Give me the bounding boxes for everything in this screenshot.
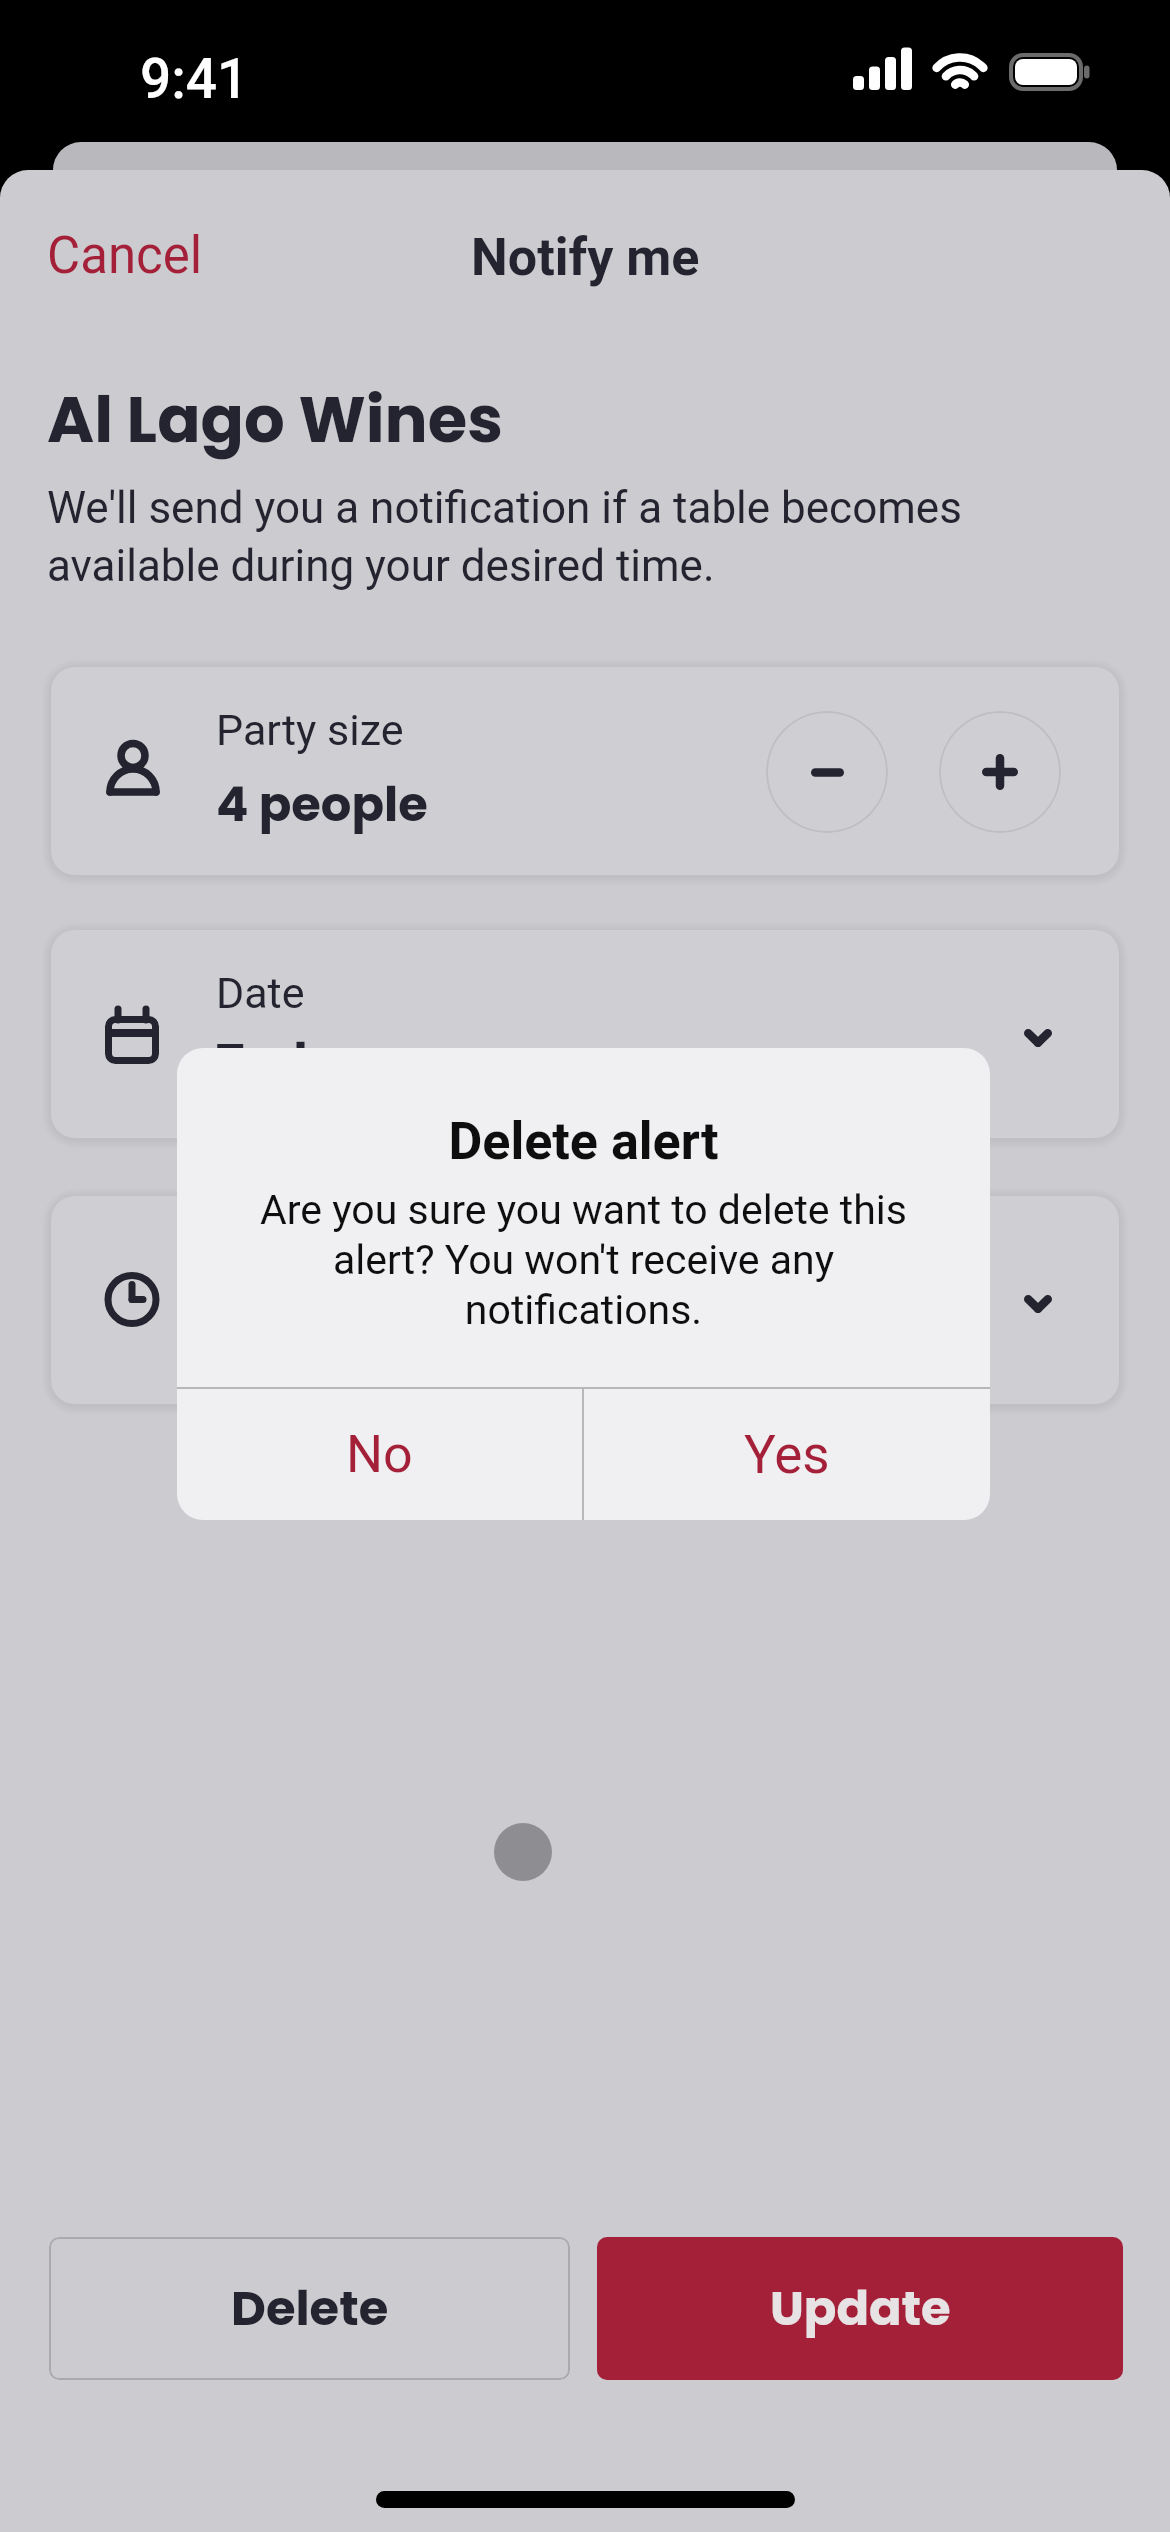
staticText: Delete — [231, 2275, 389, 2342]
staticText: Today — [216, 1027, 371, 1094]
staticText: Cancel — [47, 226, 203, 286]
staticText: 9:41 — [140, 47, 249, 111]
button[interactable]: Time — [51, 1196, 1119, 1404]
staticText: No — [346, 1424, 413, 1485]
staticText: Update — [770, 2275, 951, 2342]
staticText: Date — [216, 968, 305, 1018]
staticText: 4 people — [216, 771, 428, 838]
staticText: Al Lago Wines — [47, 375, 503, 465]
button[interactable]: Expand Date — [1002, 1002, 1074, 1066]
staticText: Are you sure you want to delete this ale… — [197, 1186, 970, 1334]
button[interactable]: Expand Time — [1002, 1268, 1074, 1332]
button[interactable]: Party size — [51, 667, 1119, 875]
button[interactable]: Decrease party size — [766, 711, 888, 833]
staticText: Yes — [744, 1424, 830, 1486]
button[interactable]: Delete — [49, 2237, 570, 2380]
button[interactable]: Yes — [584, 1389, 990, 1520]
staticText: Notify me — [471, 227, 700, 288]
button[interactable]: Cancel — [17, 208, 233, 304]
button[interactable]: Date — [51, 930, 1119, 1138]
button[interactable]: Update — [597, 2237, 1123, 2380]
staticText: Delete alert — [448, 1111, 719, 1172]
staticText: We'll send you a notification if a table… — [47, 482, 1007, 592]
button[interactable]: No — [177, 1389, 582, 1520]
staticText: Party size — [216, 705, 404, 755]
button[interactable]: Increase party size — [939, 711, 1061, 833]
